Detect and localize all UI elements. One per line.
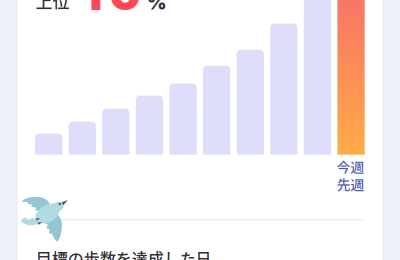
staticText: 先週 [336,174,364,194]
staticText: 目標の歩数を達成した日 [36,246,212,260]
staticText: 上位 [36,0,70,13]
staticText: 10 [82,0,141,21]
staticText: % [147,0,166,14]
staticText: 今週 [336,156,364,177]
